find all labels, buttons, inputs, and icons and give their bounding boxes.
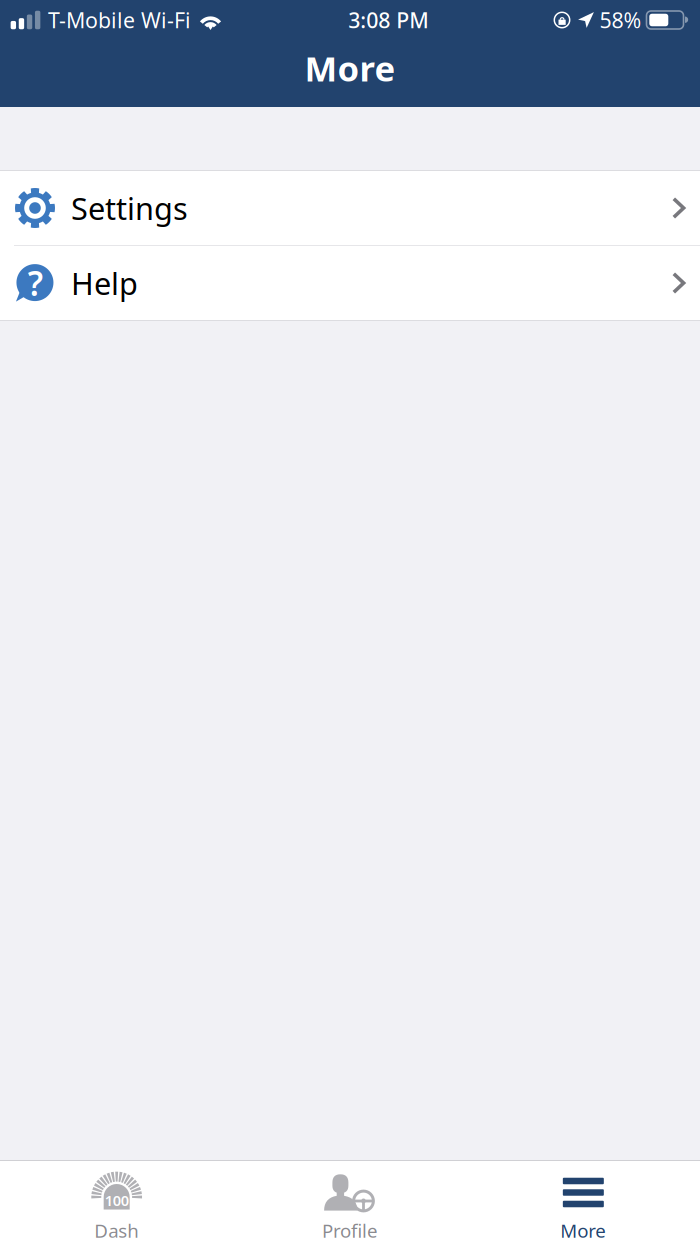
staticText: 100 xyxy=(105,1190,129,1210)
button[interactable]: Settings xyxy=(0,171,700,245)
button[interactable]: ? xyxy=(0,246,700,320)
staticText: 3:08 PM xyxy=(348,6,429,34)
staticText: 58% xyxy=(599,6,641,34)
staticText: Settings xyxy=(71,188,188,228)
staticText: Dash xyxy=(94,1218,139,1243)
staticText: T-Mobile Wi-Fi xyxy=(48,6,191,34)
button[interactable]: 100 xyxy=(0,1161,233,1244)
staticText: More xyxy=(560,1218,606,1243)
staticText: Help xyxy=(71,263,138,303)
staticText: Profile xyxy=(322,1218,378,1243)
button[interactable]: More xyxy=(467,1161,700,1244)
staticText: ? xyxy=(28,261,43,305)
staticText: More xyxy=(304,45,395,91)
button[interactable]: Profile xyxy=(233,1161,467,1244)
